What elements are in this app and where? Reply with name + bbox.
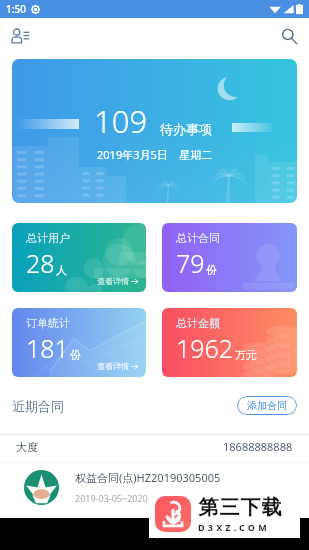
staticText: 万元 — [235, 348, 257, 362]
staticText: 181 — [26, 331, 69, 365]
staticText: 大度 — [16, 440, 38, 454]
staticText: D3XZ.COM — [198, 521, 270, 533]
button[interactable]: 订单统计 — [12, 308, 146, 377]
button[interactable]: Contacts — [4, 20, 36, 52]
button[interactable]: 总计金额 — [162, 308, 297, 377]
button[interactable]: 权益合同(点)HZ20190305005 — [0, 463, 309, 515]
staticText: 1:50 — [6, 2, 26, 16]
staticText: 第三下载 — [198, 495, 282, 520]
staticText: 109 — [94, 100, 148, 142]
staticText: 查看详情 — [97, 361, 129, 371]
staticText: 2019-03-05~2020-03-05 — [75, 492, 175, 504]
staticText: 总计金额 — [176, 316, 220, 330]
staticText: 人 — [56, 263, 67, 277]
staticText: 订单统计 — [26, 316, 70, 330]
button[interactable]: 添加合同 — [237, 396, 297, 415]
staticText: 权益合同(点)HZ20190305005 — [75, 470, 221, 485]
staticText: 18688888888 — [223, 439, 293, 454]
staticText: 总计合同 — [176, 231, 220, 245]
staticText: 份 — [70, 348, 81, 362]
staticText: 添加合同 — [247, 399, 287, 412]
button[interactable]: 总计合同 — [162, 223, 297, 292]
button[interactable]: 109 — [12, 59, 297, 203]
staticText: 1962 — [176, 331, 234, 365]
button[interactable]: Back — [0, 518, 309, 550]
staticText: 待办事项 — [160, 121, 212, 137]
staticText: 28 — [26, 246, 55, 280]
staticText: 79 — [176, 246, 205, 280]
button[interactable]: Search — [273, 20, 305, 52]
staticText: 2019年3月5日 星期二 — [97, 147, 213, 162]
staticText: 总计用户 — [26, 231, 70, 245]
button[interactable]: 总计用户 — [12, 223, 146, 292]
staticText: 份 — [206, 263, 217, 277]
button[interactable]: 大度 — [0, 436, 309, 463]
staticText: 查看详情 — [97, 276, 129, 286]
staticText: 近期合同 — [12, 398, 64, 414]
